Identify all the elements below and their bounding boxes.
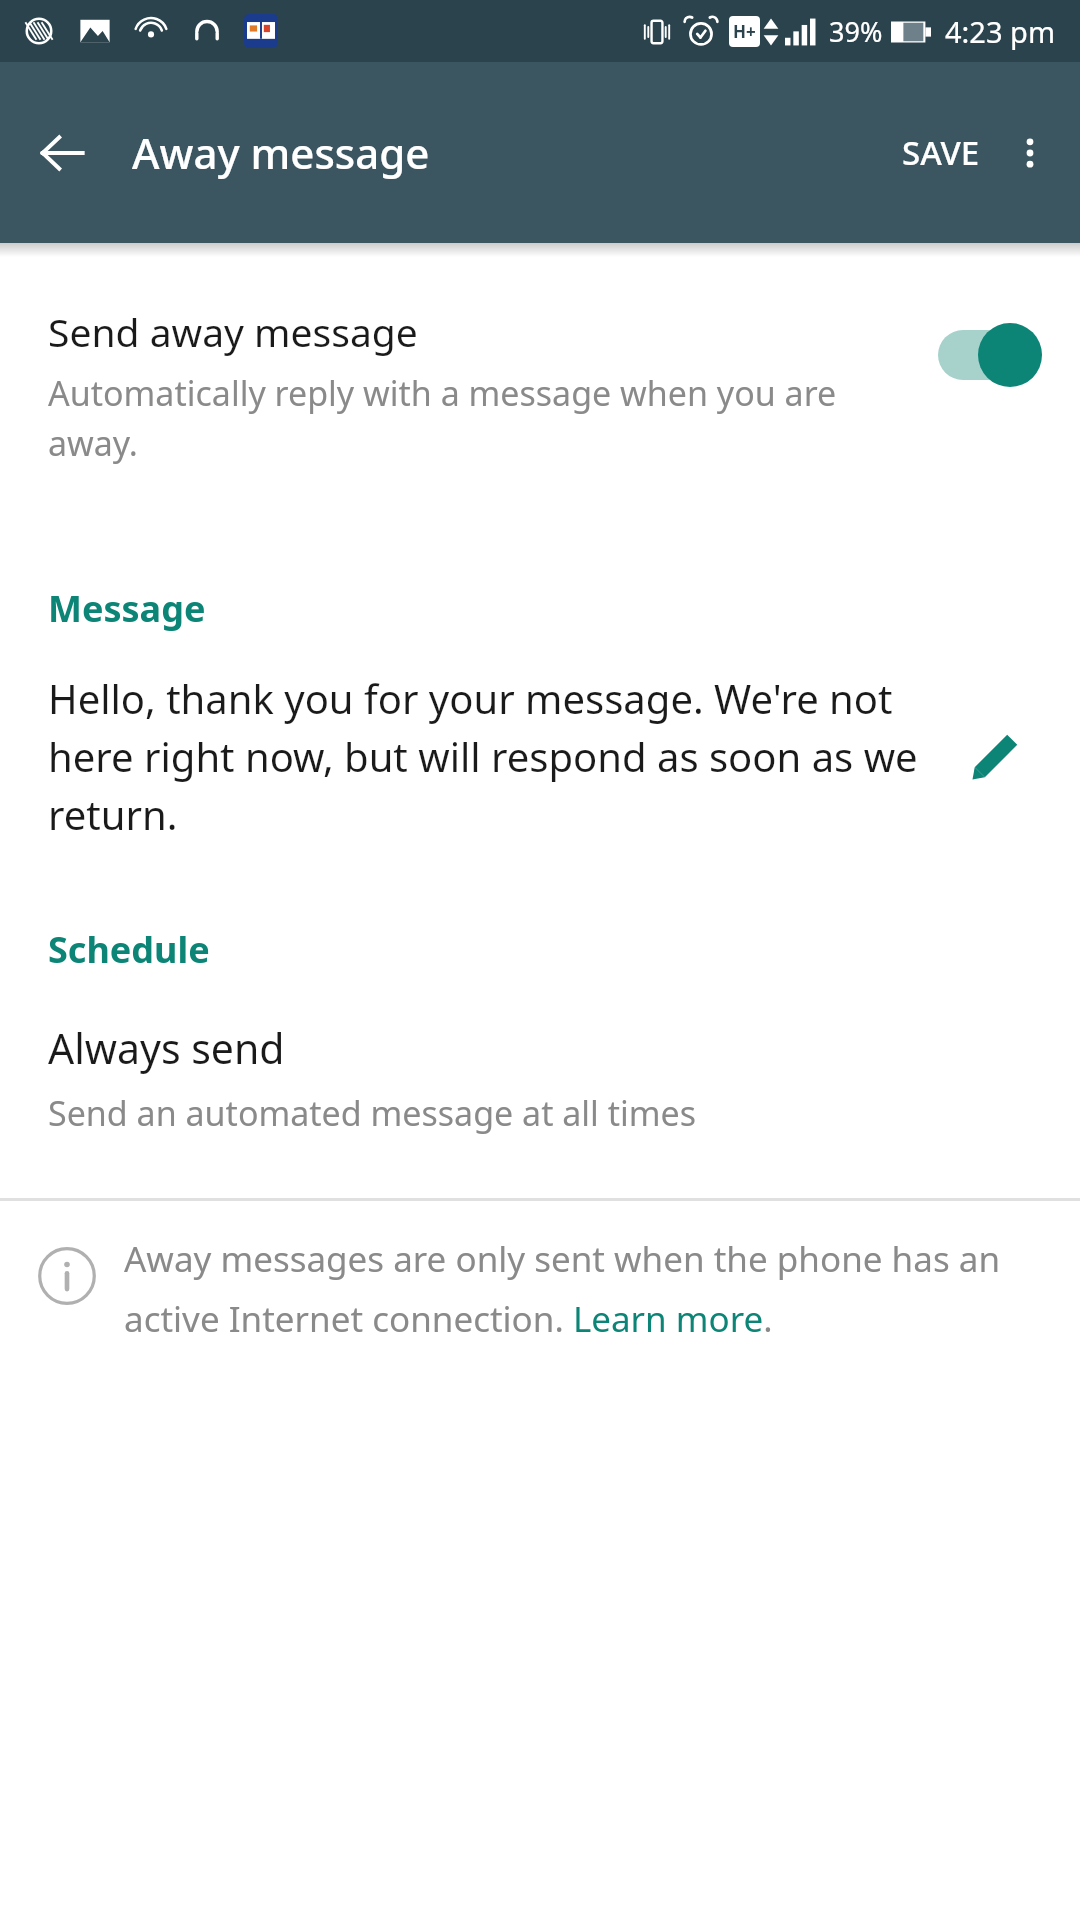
staticText: Send away message bbox=[48, 305, 418, 358]
button[interactable]: Back bbox=[26, 117, 98, 189]
staticText: 39% bbox=[829, 13, 883, 50]
staticText: 4:23 pm bbox=[945, 12, 1056, 51]
button[interactable]: Hello, thank you for your message. We're… bbox=[0, 671, 1080, 841]
staticText: H+ bbox=[733, 20, 756, 43]
staticText: SAVE bbox=[902, 130, 980, 175]
button[interactable]: Always send bbox=[0, 1014, 1080, 1176]
staticText: Automatically reply with a message when … bbox=[48, 370, 914, 466]
staticText: Schedule bbox=[48, 925, 210, 974]
button[interactable]: Edit message bbox=[948, 708, 1044, 804]
staticText: Hello, thank you for your message. We're… bbox=[48, 671, 932, 841]
staticText: Away messages are only sent when the pho… bbox=[124, 1235, 1040, 1342]
staticText: Away message bbox=[132, 124, 430, 181]
staticText: Send an automated message at all times bbox=[48, 1090, 697, 1136]
staticText: Always send bbox=[48, 1020, 285, 1076]
button[interactable]: Away messages are only sent when the pho… bbox=[124, 1235, 1040, 1342]
staticText: Message bbox=[48, 584, 206, 633]
button[interactable]: Send away message bbox=[0, 257, 1080, 496]
button[interactable]: More options bbox=[994, 117, 1066, 189]
button[interactable]: SAVE bbox=[888, 116, 994, 189]
